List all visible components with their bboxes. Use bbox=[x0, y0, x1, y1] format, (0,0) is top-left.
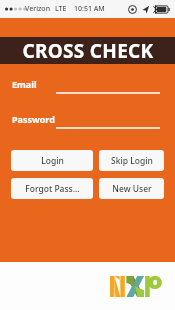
button[interactable]: Email input bbox=[56, 92, 160, 112]
staticText: New User bbox=[112, 183, 152, 195]
staticText: Skip Login bbox=[111, 155, 153, 167]
button[interactable]: Password input bbox=[56, 127, 160, 147]
button[interactable]: Forgot Pass... bbox=[11, 178, 93, 199]
staticText: Password bbox=[12, 113, 55, 125]
staticText: LTE bbox=[55, 4, 67, 14]
button[interactable]: Login bbox=[11, 150, 93, 171]
staticText: Email bbox=[12, 78, 37, 90]
other: NXP logo bbox=[110, 276, 162, 297]
staticText: Login bbox=[41, 155, 64, 167]
staticText: CROSS CHECK bbox=[22, 38, 154, 64]
staticText: 10:51 AM bbox=[74, 4, 105, 14]
button[interactable]: New User bbox=[99, 178, 164, 199]
staticText: Verizon bbox=[25, 4, 51, 14]
button[interactable]: Skip Login bbox=[99, 150, 164, 171]
staticText: Forgot Pass... bbox=[25, 183, 80, 195]
